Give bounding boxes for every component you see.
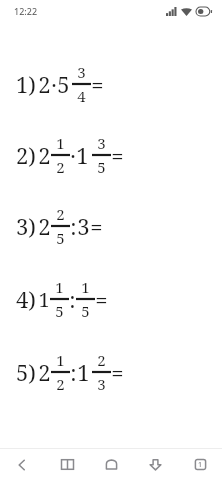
staticText: 3 xyxy=(97,374,106,394)
staticText: 2 xyxy=(38,140,51,170)
staticText: 2 xyxy=(56,157,65,177)
button[interactable]: 3) xyxy=(0,204,222,248)
staticText: · xyxy=(51,69,57,99)
staticText: 2 xyxy=(56,374,65,394)
staticText: : xyxy=(69,284,76,314)
staticText: 5 xyxy=(56,228,65,248)
staticText: = xyxy=(111,357,124,387)
staticText: 1 xyxy=(76,140,89,170)
staticText: 4 xyxy=(77,86,86,106)
staticText: 5 xyxy=(97,157,106,177)
staticText: 2 xyxy=(38,69,51,99)
staticText: = xyxy=(90,211,103,241)
staticText: 5 xyxy=(81,301,90,321)
button[interactable]: 2) xyxy=(0,133,222,177)
staticText: = xyxy=(91,69,104,99)
staticText: · xyxy=(70,140,76,170)
staticText: 2 xyxy=(38,357,51,387)
staticText: 5 xyxy=(57,69,70,99)
button[interactable]: Back xyxy=(0,449,44,480)
staticText: 3 xyxy=(97,133,106,153)
staticText: 2) xyxy=(16,140,36,170)
staticText: 3 xyxy=(77,211,90,241)
staticText: : xyxy=(70,211,77,241)
button[interactable]: 1) xyxy=(0,62,222,106)
staticText: : xyxy=(70,357,77,387)
staticText: 1 xyxy=(81,277,90,297)
button[interactable]: 5) xyxy=(0,350,222,394)
staticText: 4) xyxy=(16,284,36,314)
staticText: 3 xyxy=(77,62,86,82)
staticText: = xyxy=(111,140,124,170)
staticText: 1 xyxy=(56,133,65,153)
button[interactable]: Downloads xyxy=(133,449,177,480)
staticText: 5) xyxy=(16,357,36,387)
staticText: 1 xyxy=(38,286,50,313)
staticText: 1 xyxy=(77,357,90,387)
button[interactable]: Home xyxy=(89,449,133,480)
staticText: = xyxy=(95,284,108,314)
staticText: 3) xyxy=(16,211,36,241)
staticText: 1) xyxy=(16,69,36,99)
staticText: 1 xyxy=(56,350,65,370)
staticText: 12:22 xyxy=(14,5,38,17)
staticText: 2 xyxy=(56,204,65,224)
staticText: 2 xyxy=(38,211,51,241)
button[interactable]: Bookmarks xyxy=(45,449,89,480)
button[interactable]: Tabs xyxy=(178,449,222,480)
staticText: 1 xyxy=(55,277,64,297)
staticText: 5 xyxy=(55,301,64,321)
button[interactable]: 4) xyxy=(0,277,222,321)
staticText: 1 xyxy=(198,460,203,470)
staticText: 2 xyxy=(97,350,106,370)
